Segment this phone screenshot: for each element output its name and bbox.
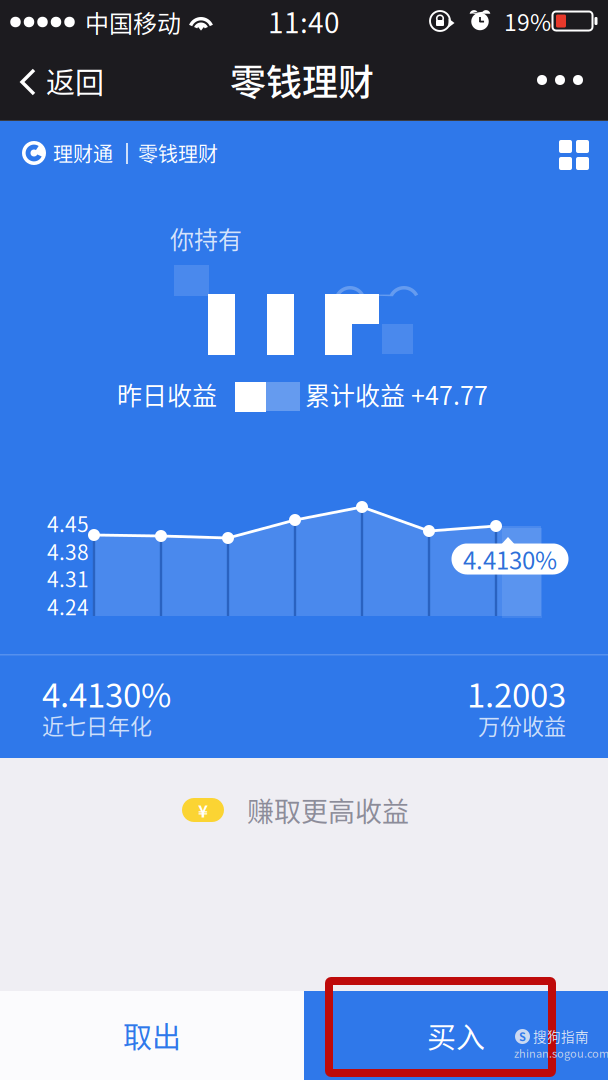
staticText: 昨日收益 — [117, 376, 217, 412]
button[interactable]: More options — [519, 58, 601, 102]
staticText: 4.4130% — [42, 669, 171, 717]
staticText: 4.24 — [47, 591, 89, 621]
staticText: 中国移动 — [85, 5, 181, 39]
staticText: zhinan.sogou.com — [514, 1045, 608, 1061]
staticText: 近七日年化 — [42, 709, 152, 741]
staticText: ¥ — [198, 798, 208, 822]
button[interactable]: ¥ — [0, 770, 608, 850]
staticText: 1.2003 — [467, 669, 566, 717]
staticText: 4.31 — [47, 563, 89, 593]
staticText: 零钱理财 — [230, 54, 374, 106]
button[interactable]: All products — [550, 131, 598, 179]
staticText: 19% — [504, 4, 551, 38]
staticText: 赚取更高收益 — [247, 790, 409, 830]
staticText: 零钱理财 — [138, 138, 218, 167]
staticText: 取出 — [123, 1014, 181, 1056]
button[interactable]: 返回 — [0, 42, 130, 121]
staticText: 搜狗指南 — [533, 1026, 589, 1046]
staticText: 理财通 — [53, 138, 113, 167]
staticText: S — [519, 1028, 526, 1044]
staticText: 4.38 — [47, 536, 89, 566]
staticText: 你持有 — [170, 221, 242, 255]
staticText: 买入 — [427, 1014, 485, 1056]
staticText: 4.45 — [47, 508, 89, 538]
staticText: 返回 — [46, 60, 104, 102]
staticText: 4.4130% — [463, 542, 557, 576]
staticText: 累计收益 +47.77 — [305, 376, 488, 412]
button[interactable]: 买入 — [304, 991, 608, 1080]
staticText: 万份收益 — [478, 709, 566, 741]
button[interactable]: 取出 — [0, 991, 304, 1080]
staticText: 11:40 — [268, 1, 340, 41]
